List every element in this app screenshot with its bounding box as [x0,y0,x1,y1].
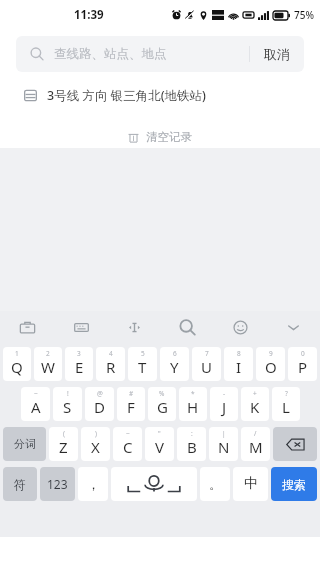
button[interactable]: : [177,427,206,461]
button[interactable]: 3号线 方向 银三角北(地铁站) [0,78,320,112]
button[interactable]: 中 [233,467,268,501]
button[interactable]: " [145,427,174,461]
button[interactable]: ) [81,427,110,461]
button[interactable]: 7 [192,347,221,381]
button[interactable]: % [148,387,176,421]
staticText: ~ [126,429,130,438]
button[interactable]: Search [161,311,214,344]
staticText: A [31,397,41,417]
staticText: 清空记录 [146,130,192,144]
button[interactable]: 8 [224,347,253,381]
button[interactable]: Emoji [214,311,267,344]
button[interactable]: ~ [21,387,50,421]
button[interactable]: ， [78,467,108,501]
button[interactable]: | [209,427,238,461]
staticText: L [282,397,290,417]
button[interactable]: Backspace [273,427,317,461]
button[interactable]: - [210,387,238,421]
button[interactable]: 查线路、站点、地点 [16,36,304,72]
button[interactable]: 分词 [3,427,46,461]
staticText: 3号线 方向 银三角北(地铁站) [47,87,206,104]
staticText: R [106,357,116,377]
button[interactable]: @ [85,387,114,421]
staticText: 8 [237,349,241,358]
staticText: # [129,389,134,398]
staticText: M [249,437,263,457]
button[interactable]: 3 [65,347,93,381]
staticText: ~ [34,389,38,398]
staticText: ? [285,389,288,398]
staticText: ( [63,429,65,438]
button[interactable]: ? [272,387,300,421]
button[interactable]: 搜索 [271,467,317,501]
staticText: 3 [77,349,81,358]
staticText: P [298,357,308,377]
button[interactable]: ( [49,427,78,461]
staticText: | [222,429,226,438]
button[interactable]: Move cursor [108,311,161,344]
staticText: W [41,357,55,377]
staticText: F [127,397,135,417]
staticText: O [265,357,277,377]
staticText: 分词 [14,437,36,451]
button[interactable]: ~ [113,427,142,461]
button[interactable]: 0 [288,347,317,381]
staticText: B [187,437,197,457]
staticText: V [155,437,165,457]
staticText: Q [11,357,23,377]
staticText: N [218,437,230,457]
button[interactable]: Space [111,467,197,501]
button[interactable]: / [241,427,270,461]
staticText: 0 [301,349,305,358]
staticText: 搜索 [282,477,306,492]
staticText: * [191,389,195,398]
button[interactable]: 4 [96,347,125,381]
staticText: 123 [47,476,68,492]
staticText: Y [170,357,179,377]
staticText: @ [97,389,103,398]
staticText: S [63,397,72,417]
button[interactable]: 6 [160,347,189,381]
staticText: Z [59,437,68,457]
button[interactable]: * [179,387,207,421]
staticText: 75% [294,8,314,22]
button[interactable]: 5 [128,347,157,381]
staticText: 取消 [264,46,290,62]
staticText: 5 [141,349,145,358]
button[interactable]: + [241,387,269,421]
staticText: J [222,397,227,417]
staticText: T [138,357,147,377]
staticText: D [94,397,105,417]
staticText: 1 [15,349,19,358]
staticText: E [75,357,84,377]
staticText: 2 [46,349,50,358]
staticText: 中 [244,475,258,493]
staticText: 。 [209,476,222,492]
staticText: + [253,389,257,398]
staticText: 4 [109,349,113,358]
staticText: X [91,437,100,457]
staticText: 6 [173,349,177,358]
button[interactable]: Keyboard layout [54,311,108,344]
staticText: 符 [14,477,26,492]
button[interactable]: 清空记录 [118,126,202,148]
button[interactable]: ! [53,387,82,421]
button[interactable]: 。 [200,467,230,501]
staticText: " [158,429,161,438]
button[interactable]: Clipboard [0,311,54,344]
button[interactable]: 9 [256,347,285,381]
staticText: 查线路、站点、地点 [54,46,249,62]
button[interactable]: 1 [3,347,31,381]
button[interactable]: 符 [3,467,37,501]
button[interactable]: Hide keyboard [267,311,320,344]
button[interactable]: 123 [40,467,75,501]
button[interactable]: 取消 [250,36,304,72]
staticText: / [254,429,257,438]
button[interactable]: 2 [34,347,62,381]
staticText: I [236,357,242,377]
button[interactable]: # [117,387,145,421]
staticText: 9 [269,349,273,358]
staticText: ) [95,429,97,438]
staticText: U [201,357,212,377]
staticText: - [223,389,226,398]
